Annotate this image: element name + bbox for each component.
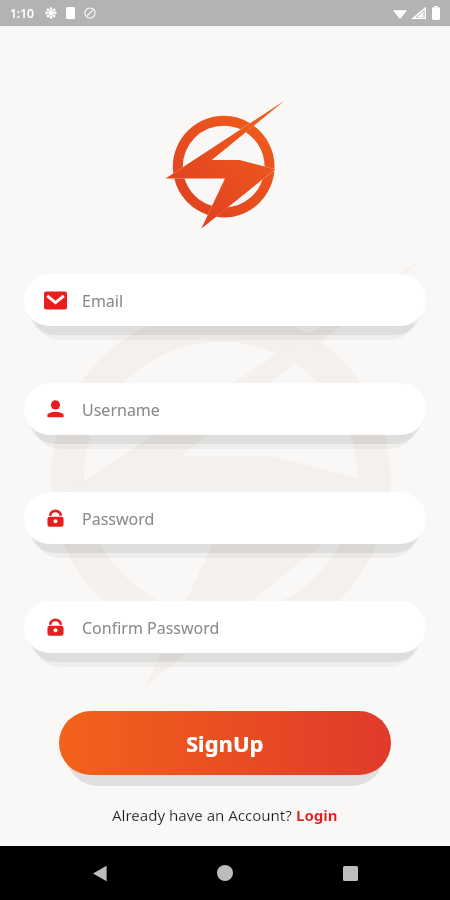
button[interactable]: Confirm Password — [24, 601, 426, 653]
staticText: Password — [82, 508, 155, 530]
button[interactable]: Email — [24, 274, 426, 326]
button[interactable]: Username — [24, 383, 426, 435]
button[interactable]: Recent apps — [326, 849, 374, 897]
button[interactable]: Back — [77, 849, 125, 897]
staticText: Confirm Password — [82, 617, 220, 639]
staticText: Username — [82, 399, 160, 421]
staticText: Already have an Account? — [112, 805, 296, 825]
staticText: Email — [82, 290, 124, 312]
staticText: 1:10 — [10, 5, 34, 21]
button[interactable]: SignUp — [59, 711, 391, 775]
staticText: SignUp — [186, 728, 264, 758]
button[interactable]: Home — [201, 849, 249, 897]
button[interactable]: Login — [296, 805, 338, 825]
button[interactable]: Password — [24, 492, 426, 544]
staticText: Login — [296, 805, 338, 825]
